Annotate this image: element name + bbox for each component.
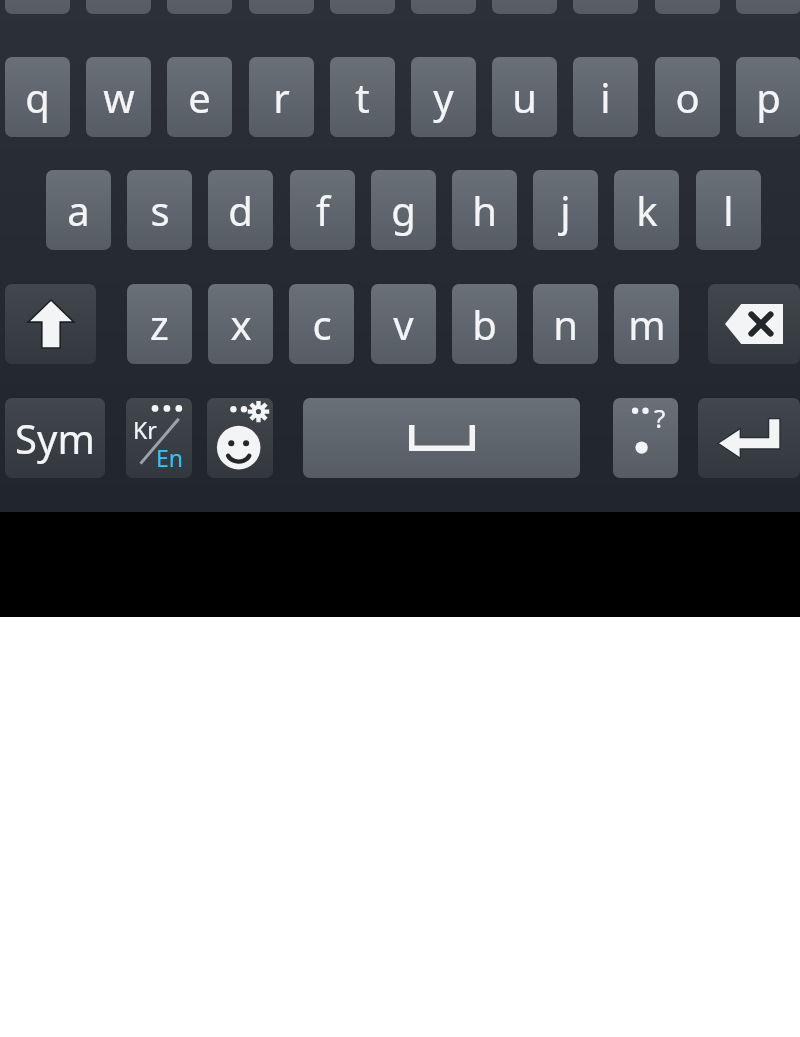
- staticText: v: [393, 297, 414, 351]
- button[interactable]: j: [533, 170, 598, 250]
- button[interactable]: t: [330, 57, 395, 137]
- button[interactable]: x: [208, 284, 273, 364]
- button[interactable]: n: [533, 284, 598, 364]
- staticText: s: [150, 183, 170, 237]
- staticText: k: [636, 183, 658, 237]
- button[interactable]: c: [289, 284, 354, 364]
- staticText: x: [230, 297, 252, 351]
- staticText: p: [756, 70, 781, 124]
- staticText: b: [472, 297, 497, 351]
- button[interactable]: number key: [86, 0, 151, 14]
- staticText: d: [228, 183, 253, 237]
- button[interactable]: Emoji and settings: [207, 398, 273, 478]
- button[interactable]: number key: [492, 0, 557, 14]
- button[interactable]: r: [249, 57, 314, 137]
- button[interactable]: number key: [655, 0, 720, 14]
- button[interactable]: w: [86, 57, 151, 137]
- button[interactable]: number key: [330, 0, 395, 14]
- button[interactable]: Space: [303, 398, 580, 478]
- button[interactable]: q: [5, 57, 70, 137]
- staticText: a: [67, 183, 90, 237]
- button[interactable]: number key: [249, 0, 314, 14]
- staticText: z: [150, 297, 169, 351]
- button[interactable]: Backspace: [708, 284, 800, 364]
- button[interactable]: l: [696, 170, 761, 250]
- button[interactable]: number key: [167, 0, 232, 14]
- button[interactable]: v: [371, 284, 436, 364]
- button[interactable]: Period and punctuation: [613, 398, 678, 478]
- button[interactable]: b: [452, 284, 517, 364]
- button[interactable]: d: [208, 170, 273, 250]
- staticText: Sym: [15, 411, 95, 465]
- staticText: u: [512, 70, 537, 124]
- button[interactable]: a: [46, 170, 111, 250]
- button[interactable]: number key: [5, 0, 70, 14]
- button[interactable]: Switch language Korean English: [126, 398, 192, 478]
- staticText: r: [273, 70, 290, 124]
- staticText: e: [188, 70, 211, 124]
- button[interactable]: k: [614, 170, 679, 250]
- staticText: c: [312, 297, 332, 351]
- staticText: o: [675, 70, 700, 124]
- staticText: h: [472, 183, 497, 237]
- button[interactable]: number key: [736, 0, 800, 14]
- staticText: m: [628, 297, 666, 351]
- staticText: j: [560, 183, 571, 237]
- button[interactable]: h: [452, 170, 517, 250]
- staticText: w: [103, 70, 135, 124]
- staticText: Kr: [133, 414, 157, 445]
- button[interactable]: y: [411, 57, 476, 137]
- button[interactable]: u: [492, 57, 557, 137]
- staticText: l: [723, 183, 734, 237]
- staticText: ?: [654, 400, 666, 435]
- button[interactable]: s: [127, 170, 192, 250]
- staticText: q: [25, 70, 50, 124]
- button[interactable]: Shift: [5, 284, 96, 364]
- staticText: f: [316, 183, 330, 237]
- button[interactable]: number key: [411, 0, 476, 14]
- staticText: g: [391, 183, 416, 237]
- button[interactable]: g: [371, 170, 436, 250]
- button[interactable]: Sym: [5, 398, 105, 478]
- staticText: y: [433, 70, 454, 124]
- button[interactable]: Enter: [698, 398, 800, 478]
- staticText: En: [156, 442, 184, 473]
- staticText: t: [355, 70, 370, 124]
- button[interactable]: z: [127, 284, 192, 364]
- button[interactable]: p: [736, 57, 800, 137]
- button[interactable]: i: [573, 57, 638, 137]
- staticText: n: [553, 297, 578, 351]
- button[interactable]: f: [290, 170, 355, 250]
- button[interactable]: e: [167, 57, 232, 137]
- button[interactable]: m: [614, 284, 679, 364]
- button[interactable]: o: [655, 57, 720, 137]
- button[interactable]: number key: [573, 0, 638, 14]
- staticText: i: [600, 70, 611, 124]
